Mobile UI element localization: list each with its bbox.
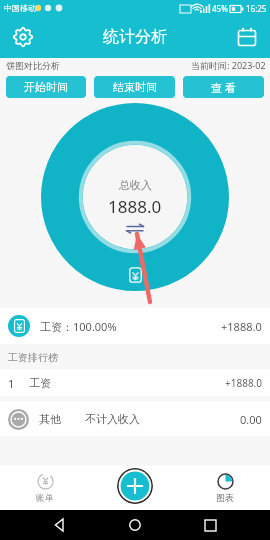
button[interactable]: 工资：100.00% [0,308,270,344]
staticText: +1888.0 [225,376,262,390]
staticText: +1888.0 [221,319,262,334]
button[interactable]: Switch income expense [122,221,148,235]
staticText: 总收入 [119,178,152,192]
staticText: 当前时间: 2023-02 [191,59,266,71]
staticText: 16:25 [246,3,267,14]
button[interactable]: 开始时间 [6,76,86,98]
staticText: 统计分析 [103,27,167,47]
button[interactable]: 账单 [0,466,90,510]
staticText: 工资：100.00% [40,319,117,334]
staticText: 工资 [29,376,51,390]
button[interactable]: Recents [195,510,225,540]
button[interactable]: 图表 [180,466,270,510]
staticText: 不计入收入 [85,412,140,426]
staticText: 账单 [36,492,54,503]
staticText: 45% [212,3,228,14]
staticText: 1888.0 [108,195,162,218]
button[interactable]: 查 看 [183,76,264,98]
staticText: 中国移动 [4,3,36,13]
button[interactable]: 结束时间 [94,76,175,98]
staticText: 1 [8,376,15,391]
button[interactable]: Settings [8,22,38,52]
staticText: 工资排行榜 [8,351,58,364]
button[interactable]: Calendar [232,22,262,52]
button[interactable]: 其他 [0,402,270,436]
button[interactable]: Home [120,510,150,540]
staticText: 结束时间 [113,80,157,94]
button[interactable]: Back [45,510,75,540]
button[interactable]: 1 [0,370,270,396]
staticText: 图表 [216,492,234,503]
button[interactable]: Add record [117,468,153,504]
staticText: 0.00 [240,412,262,427]
staticText: 饼图对比分析 [6,60,60,71]
staticText: 其他 [39,412,61,426]
staticText: 开始时间 [24,80,68,94]
staticText: 查 看 [211,80,236,95]
